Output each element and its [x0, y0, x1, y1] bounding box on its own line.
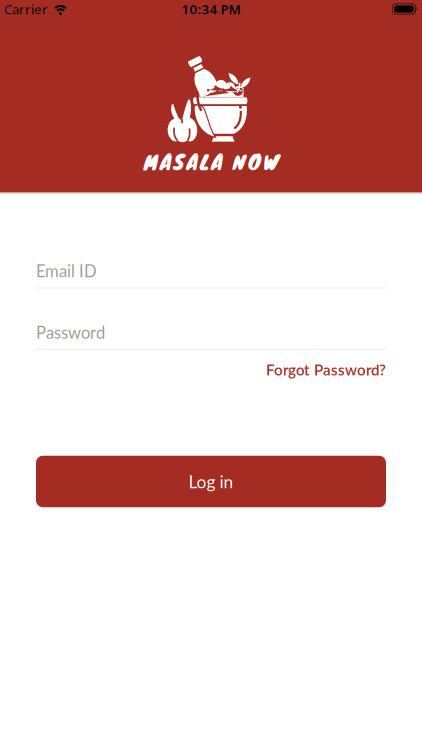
- staticText: Forgot Password?: [266, 361, 386, 379]
- staticText: Carrier: [4, 0, 48, 18]
- staticText: MASALA NOW: [144, 146, 278, 177]
- staticText: Log in: [188, 471, 233, 492]
- staticText: Password: [36, 322, 105, 342]
- textField[interactable]: Email ID: [36, 261, 386, 281]
- button[interactable]: Log in: [36, 456, 386, 507]
- staticText: 10:34 PM: [181, 0, 240, 18]
- textField[interactable]: Password: [36, 322, 386, 342]
- button[interactable]: Forgot Password?: [266, 361, 386, 379]
- staticText: Email ID: [36, 261, 97, 281]
